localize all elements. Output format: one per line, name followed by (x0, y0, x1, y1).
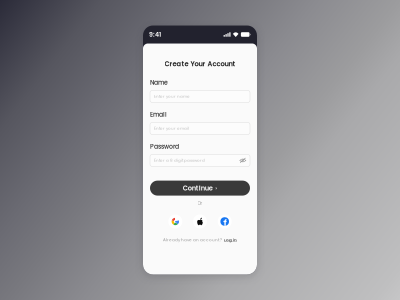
button[interactable]: Log in (224, 237, 237, 243)
button[interactable]: Continue (150, 181, 250, 196)
staticText: Enter your name (154, 94, 190, 99)
button[interactable]: Sign up with Apple (193, 214, 207, 228)
staticText: Enter a 8 digit password (154, 158, 205, 163)
staticText: Name (150, 78, 168, 87)
staticText: Or (197, 200, 202, 206)
staticText: Create Your Account (164, 59, 235, 69)
staticText: Enter your email (154, 126, 189, 131)
staticText: Continue (183, 183, 213, 193)
staticText: Already have an account? (163, 237, 222, 243)
staticText: › (215, 184, 217, 192)
button[interactable]: Sign up with Facebook (218, 214, 232, 228)
button[interactable]: Sign up with Google (168, 214, 182, 228)
staticText: Email (150, 110, 167, 119)
staticText: 9:41 (149, 30, 161, 39)
staticText: Password (150, 142, 179, 151)
staticText: Log in (224, 237, 237, 243)
